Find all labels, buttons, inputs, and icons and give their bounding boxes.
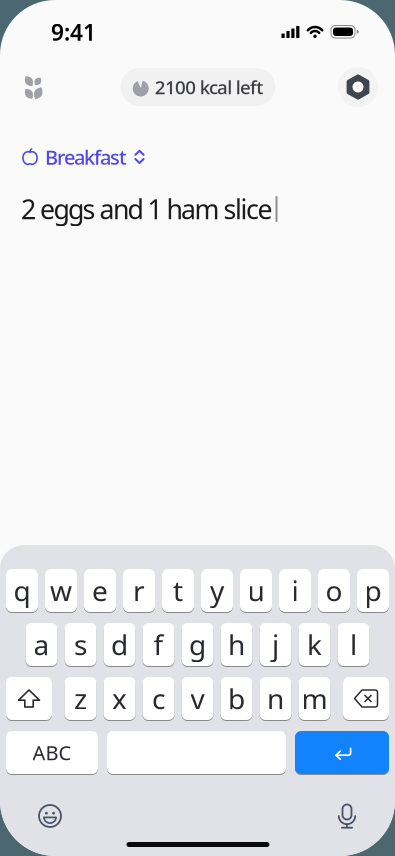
button[interactable]: c [142,676,174,720]
button[interactable]: Breakfast [22,144,145,170]
button[interactable]: g [181,622,213,666]
staticText: v [190,680,204,717]
button[interactable]: j [259,622,291,666]
button[interactable]: n [259,676,291,720]
button[interactable]: y [201,568,233,612]
staticText: 2100 kcal left [155,75,263,99]
staticText: b [228,680,245,717]
button[interactable]: o [318,568,350,612]
button[interactable]: t [162,568,194,612]
button[interactable]: d [103,622,135,666]
staticText: j [272,626,279,663]
staticText: g [189,626,206,663]
staticText: t [173,572,183,609]
staticText: u [247,572,264,609]
staticText: d [111,626,128,663]
button[interactable]: s [64,622,96,666]
staticText: 9:41 [51,17,96,47]
button[interactable] [338,67,378,107]
button[interactable]: q [6,568,38,612]
button[interactable]: x [103,676,135,720]
button[interactable]: l [337,622,369,666]
button[interactable]: m [298,676,330,720]
staticText: o [325,572,342,609]
button[interactable]: 2100 kcal left [121,68,275,106]
button[interactable]: a [25,622,57,666]
button[interactable]: v [181,676,213,720]
button[interactable] [327,796,367,836]
staticText: m [301,680,327,717]
staticText: z [74,680,87,717]
staticText: i [291,572,298,609]
staticText: w [50,572,72,609]
staticText: r [133,572,145,609]
staticText: h [228,626,245,663]
button[interactable]: i [279,568,311,612]
staticText: k [307,626,322,663]
button[interactable]: k [298,622,330,666]
button[interactable]: f [142,622,174,666]
button[interactable]: r [123,568,155,612]
button[interactable]: z [64,676,96,720]
staticText: 2 eggs and 1 ham slice [21,191,272,227]
staticText: y [210,572,224,609]
staticText: a [33,626,49,663]
button[interactable]: w [45,568,77,612]
staticText: s [74,626,87,663]
staticText: x [112,680,127,717]
button[interactable]: ABC [6,730,98,774]
button[interactable]: h [220,622,252,666]
staticText: c [152,680,165,717]
button[interactable]: p [357,568,389,612]
button[interactable] [295,730,389,774]
button[interactable] [107,730,286,774]
staticText: p [364,572,381,609]
staticText: f [153,626,163,663]
button[interactable] [30,796,70,836]
staticText: Breakfast [45,144,127,170]
button[interactable] [6,676,52,720]
button[interactable]: u [240,568,272,612]
staticText: q [13,572,30,609]
button[interactable]: e [84,568,116,612]
staticText: l [350,626,357,663]
button[interactable]: b [220,676,252,720]
staticText: e [92,572,108,609]
button[interactable] [343,676,389,720]
staticText: ABC [32,739,71,766]
staticText: n [267,680,284,717]
